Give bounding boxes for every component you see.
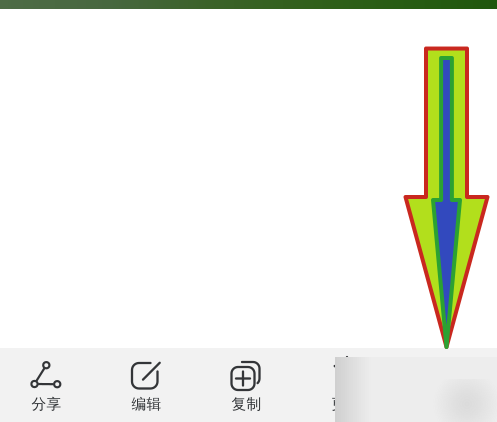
- button[interactable]: 复制: [193, 348, 293, 422]
- button[interactable]: 分享: [0, 348, 93, 422]
- button[interactable]: 编辑: [93, 348, 193, 422]
- staticText: 分享: [31, 395, 61, 413]
- staticText: 更多: [331, 395, 361, 413]
- button[interactable]: 更多: [293, 348, 393, 422]
- staticText: 复制: [231, 395, 261, 413]
- staticText: 编辑: [131, 395, 161, 413]
